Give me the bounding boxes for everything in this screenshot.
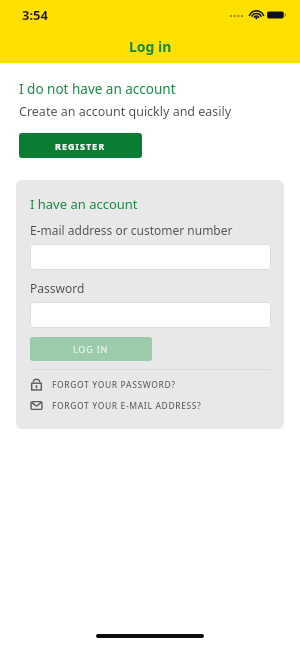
staticText: Create an account quickly and easily — [19, 103, 232, 120]
staticText: E-mail address or customer number — [30, 222, 233, 238]
staticText: LOG IN — [73, 343, 109, 355]
staticText: I have an account — [30, 195, 138, 213]
staticText: 3:54 — [22, 6, 48, 24]
button[interactable] — [30, 302, 271, 328]
staticText: Log in — [129, 37, 172, 56]
button[interactable]: FORGOT YOUR PASSWORD? — [30, 375, 271, 394]
button[interactable]: LOG IN — [30, 337, 152, 361]
staticText: Password — [30, 280, 85, 296]
button[interactable]: REGISTER — [19, 133, 142, 158]
button[interactable]: FORGOT YOUR E-MAIL ADDRESS? — [30, 396, 271, 415]
staticText: REGISTER — [55, 140, 106, 152]
staticText: I do not have an account — [19, 80, 176, 98]
staticText: FORGOT YOUR PASSWORD? — [52, 379, 176, 391]
staticText: FORGOT YOUR E-MAIL ADDRESS? — [52, 400, 202, 412]
button[interactable] — [30, 244, 271, 270]
